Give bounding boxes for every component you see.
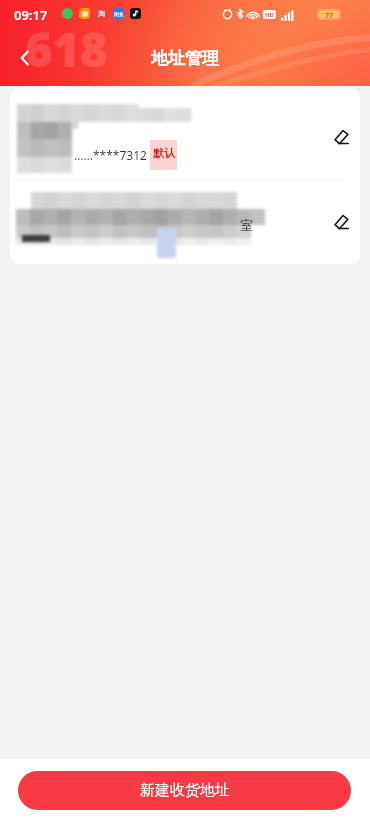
button[interactable]: Edit address	[319, 199, 360, 243]
staticText: 09:17	[14, 6, 48, 24]
staticText: ……****7312	[74, 147, 147, 163]
button[interactable]: Edit address	[319, 114, 360, 158]
staticText: 新建收货地址	[140, 781, 230, 800]
staticText: 618	[25, 17, 108, 81]
button[interactable]	[10, 180, 360, 264]
button[interactable]: Back	[3, 36, 47, 80]
staticText: HD	[265, 11, 274, 19]
staticText: 室	[240, 217, 253, 233]
staticText: 默认	[153, 146, 175, 160]
button[interactable]	[10, 88, 360, 179]
staticText: 淘	[98, 9, 105, 18]
staticText: 77	[325, 11, 334, 18]
staticText: 闲鱼	[114, 11, 124, 17]
button[interactable]: 新建收货地址	[18, 771, 351, 810]
staticText: 地址管理	[151, 48, 219, 69]
